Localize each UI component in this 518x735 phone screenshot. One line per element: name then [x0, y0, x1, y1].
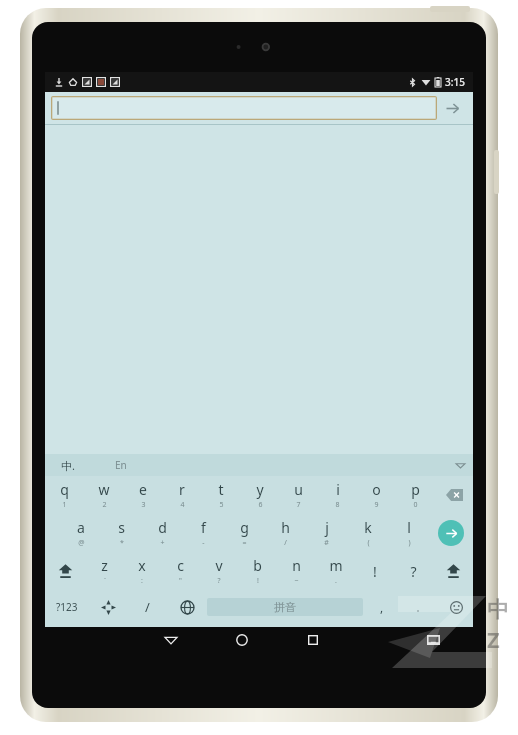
- button[interactable]: y: [240, 476, 279, 514]
- button[interactable]: Home: [206, 627, 277, 653]
- button[interactable]: /: [127, 590, 167, 624]
- button[interactable]: l: [388, 514, 429, 552]
- staticText: k: [364, 518, 372, 537]
- staticText: ?123: [56, 600, 78, 614]
- button[interactable]: 。: [401, 590, 439, 624]
- staticText: r: [179, 480, 185, 499]
- button[interactable]: Hide keyboard: [447, 454, 473, 476]
- button[interactable]: u: [279, 476, 318, 514]
- button[interactable]: n: [277, 552, 316, 590]
- button[interactable]: j: [306, 514, 347, 552]
- staticText: 7: [296, 500, 301, 510]
- button[interactable]: k: [347, 514, 388, 552]
- button[interactable]: Go: [437, 93, 467, 123]
- button[interactable]: Back: [135, 627, 206, 653]
- staticText: z: [101, 556, 108, 575]
- staticText: o: [372, 480, 381, 499]
- staticText: h: [281, 518, 290, 537]
- staticText: !: [257, 576, 259, 586]
- button[interactable]: Backspace: [435, 476, 473, 514]
- staticText: ~: [294, 576, 299, 586]
- staticText: u: [294, 480, 303, 499]
- staticText: 拼音: [274, 600, 296, 614]
- staticText: 4: [180, 500, 185, 510]
- staticText: a: [77, 518, 85, 537]
- button[interactable]: 拼音: [207, 598, 363, 616]
- button[interactable]: z: [85, 552, 123, 590]
- button[interactable]: d: [142, 514, 183, 552]
- staticText: y: [256, 480, 264, 499]
- staticText: !: [373, 562, 377, 581]
- staticText: ): [408, 538, 411, 548]
- staticText: 8: [335, 500, 340, 510]
- staticText: 中: [487, 596, 509, 624]
- button[interactable]: Change language: [167, 590, 207, 624]
- staticText: i: [336, 480, 340, 499]
- button[interactable]: t: [201, 476, 240, 514]
- button[interactable]: g: [224, 514, 265, 552]
- button[interactable]: x: [123, 552, 161, 590]
- button[interactable]: Enter: [429, 514, 473, 552]
- button[interactable]: w: [84, 476, 123, 514]
- button[interactable]: i: [318, 476, 357, 514]
- staticText: /: [284, 538, 287, 548]
- staticText: x: [138, 556, 146, 575]
- staticText: .: [335, 576, 337, 586]
- staticText: `: [104, 576, 106, 586]
- button[interactable]: s: [101, 514, 142, 552]
- button[interactable]: m: [316, 552, 355, 590]
- button[interactable]: En: [91, 454, 151, 476]
- button[interactable]: r: [162, 476, 201, 514]
- button[interactable]: Emoji: [439, 590, 473, 624]
- staticText: m: [329, 556, 343, 575]
- staticText: ,: [380, 599, 384, 615]
- staticText: #: [324, 538, 329, 548]
- button[interactable]: a: [61, 514, 101, 552]
- staticText: 5: [219, 500, 224, 510]
- staticText: l: [407, 518, 411, 537]
- button[interactable]: q: [45, 476, 84, 514]
- button[interactable]: c: [161, 552, 199, 590]
- button[interactable]: e: [123, 476, 162, 514]
- button[interactable]: Arrow keys: [89, 590, 127, 624]
- staticText: =: [242, 538, 247, 548]
- staticText: d: [158, 518, 167, 537]
- button[interactable]: !: [355, 552, 394, 590]
- staticText: s: [118, 518, 125, 537]
- staticText: w: [98, 480, 110, 499]
- staticText: ?: [217, 576, 221, 586]
- staticText: +: [160, 538, 165, 548]
- button[interactable]: [51, 96, 437, 120]
- staticText: /: [145, 598, 150, 616]
- staticText: t: [218, 480, 224, 499]
- staticText: 2: [102, 500, 107, 510]
- button[interactable]: ?123: [45, 590, 89, 624]
- staticText: g: [240, 518, 249, 537]
- staticText: q: [60, 480, 69, 499]
- button[interactable]: Shift: [45, 552, 85, 590]
- button[interactable]: b: [238, 552, 277, 590]
- staticText: n: [292, 556, 301, 575]
- button[interactable]: Shift: [433, 552, 473, 590]
- button[interactable]: ,: [363, 590, 401, 624]
- button[interactable]: Recents: [277, 627, 348, 653]
- button[interactable]: ?: [394, 552, 433, 590]
- staticText: (: [367, 538, 370, 548]
- button[interactable]: f: [183, 514, 224, 552]
- button[interactable]: o: [357, 476, 396, 514]
- button[interactable]: v: [199, 552, 238, 590]
- button[interactable]: Switch keyboard: [412, 627, 455, 653]
- staticText: 3: [141, 500, 146, 510]
- staticText: 3:15: [445, 75, 465, 89]
- staticText: -: [202, 538, 205, 548]
- staticText: 9: [374, 500, 379, 510]
- button[interactable]: p: [396, 476, 435, 514]
- staticText: j: [325, 518, 329, 537]
- staticText: 0: [413, 500, 418, 510]
- staticText: e: [139, 480, 147, 499]
- button[interactable]: h: [265, 514, 306, 552]
- button[interactable]: 中.: [45, 454, 91, 476]
- staticText: *: [120, 538, 124, 548]
- staticText: :: [141, 576, 143, 586]
- staticText: ?: [410, 562, 417, 581]
